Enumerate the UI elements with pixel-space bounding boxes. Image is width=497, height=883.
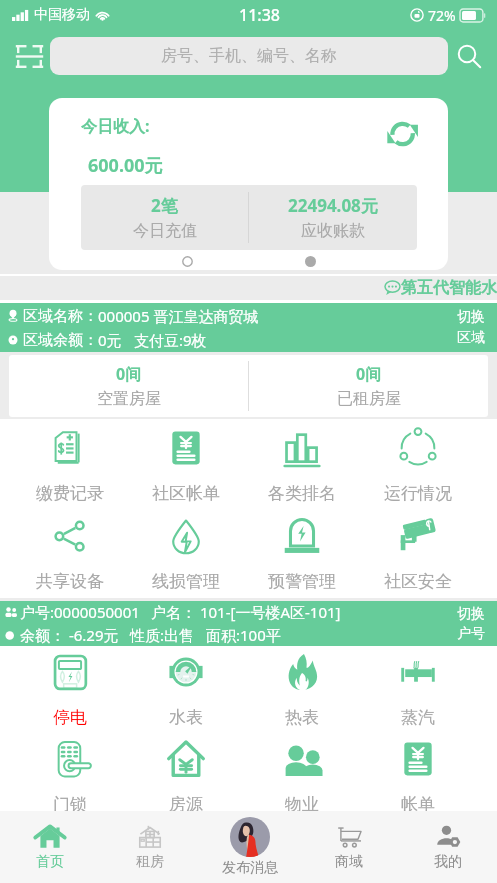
button[interactable]: 门锁 [12,741,128,811]
staticText: 切换 [457,308,485,326]
staticText: 中国移动 [34,6,90,24]
button[interactable]: 社区帐单 [128,430,244,504]
staticText: 支付豆:9枚 [134,330,207,350]
staticText: 租房 [136,853,164,871]
staticText: 线损管理 [152,571,220,592]
button[interactable]: 22494.08元 [249,185,417,250]
button[interactable]: 房号、手机、编号、名称 [50,37,448,75]
staticText: 商域 [335,853,363,871]
button[interactable]: Refresh [386,116,422,152]
staticText: 水表 [169,707,203,728]
staticText: 热表 [285,707,319,728]
staticText: 缴费记录 [36,483,104,504]
staticText: 空置房屋 [97,389,161,409]
button[interactable]: 缴费记录 [12,430,128,504]
staticText: 社区帐单 [152,483,220,504]
staticText: 今日收入: [81,115,150,137]
staticText: 第五代智能水 [401,278,497,298]
staticText: 蒸汽 [401,707,435,728]
button[interactable]: 0间 [9,355,248,417]
staticText: 我的 [434,853,462,871]
button[interactable]: 水表 [128,654,244,728]
button[interactable]: Search [448,30,491,82]
staticText: 切换 [457,605,485,623]
staticText: 预警管理 [268,571,336,592]
staticText: 运行情况 [384,483,452,504]
staticText: 0元 [98,330,122,350]
staticText: 应收账款 [301,221,365,241]
button[interactable]: 停电 [12,654,128,728]
staticText: 余额： -6.29元 [20,625,119,645]
button[interactable]: 蒸汽 [360,654,476,728]
staticText: 房源 [169,794,203,811]
button[interactable]: 切换 [453,603,489,645]
staticText: 社区安全 [384,571,452,592]
button[interactable]: 0间 [249,355,488,417]
staticText: 帐单 [401,794,435,811]
button[interactable]: 预警管理 [244,518,360,592]
button[interactable]: 热表 [244,654,360,728]
button[interactable]: 社区安全 [360,518,476,592]
staticText: 性质:出售 [130,625,195,645]
staticText: 房号、手机、编号、名称 [161,46,337,66]
staticText: 72% [428,6,456,25]
button[interactable]: 房源 [128,741,244,811]
staticText: 22494.08元 [288,194,378,217]
button[interactable]: 商域 [299,811,398,883]
staticText: 000005 晋江皇达商贸城 [98,306,259,326]
button[interactable]: 帐单 [360,741,476,811]
staticText: 11:38 [239,4,280,26]
staticText: 户号 [457,625,485,643]
staticText: 首页 [36,853,64,871]
button[interactable]: 发布消息 [200,811,299,883]
staticText: 门锁 [53,794,87,811]
staticText: 2笔 [151,194,178,217]
button[interactable]: 物业 [244,741,360,811]
button[interactable]: 线损管理 [128,518,244,592]
button[interactable]: 共享设备 [12,518,128,592]
staticText: 发布消息 [222,859,278,877]
button[interactable]: 我的 [398,811,497,883]
staticText: 停电 [53,707,87,728]
staticText: 户名： 101-[一号楼A区-101] [151,602,341,622]
staticText: 面积:100平 [206,625,281,645]
staticText: 区域名称： [23,307,98,326]
staticText: 户号:0000050001 [20,602,140,622]
staticText: 共享设备 [36,571,104,592]
staticText: 各类排名 [268,483,336,504]
button[interactable]: 2笔 [81,185,248,250]
button[interactable]: 各类排名 [244,430,360,504]
button[interactable]: 切换 [453,306,489,349]
staticText: 区域 [457,329,485,347]
button[interactable]: 租房 [100,811,200,883]
staticText: 区域余额： [23,331,98,350]
staticText: 0间 [356,363,382,385]
button[interactable]: 运行情况 [360,430,476,504]
button[interactable]: Scan [8,35,50,77]
staticText: 物业 [285,794,319,811]
staticText: 600.00元 [88,153,163,178]
staticText: 0间 [116,363,142,385]
staticText: 已租房屋 [337,389,401,409]
staticText: 今日充值 [133,221,197,241]
button[interactable]: 首页 [0,811,100,883]
